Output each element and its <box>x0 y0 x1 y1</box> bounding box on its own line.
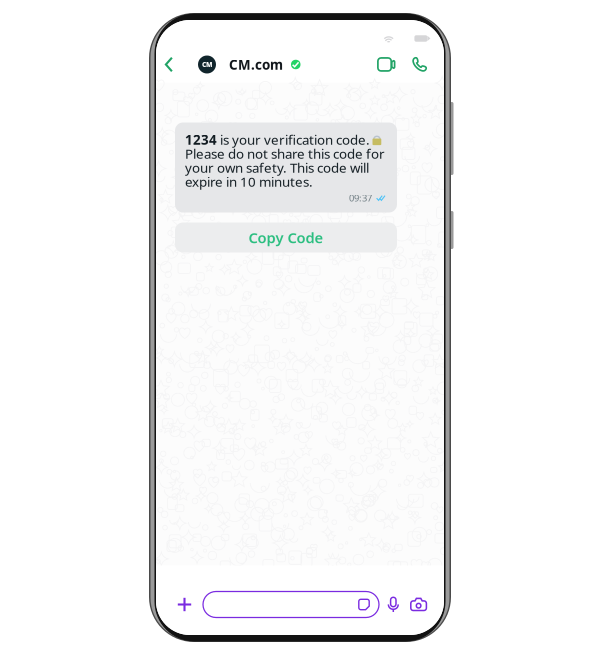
button[interactable]: Type a message <box>203 591 379 617</box>
button[interactable]: Voice call <box>411 49 428 79</box>
staticText: Please do not share this code for <box>185 145 385 162</box>
button[interactable]: CM <box>198 47 300 81</box>
staticText: your own safety. This code will <box>185 159 369 176</box>
button[interactable]: Video call <box>376 49 397 79</box>
button[interactable]: Copy Code <box>175 222 397 252</box>
staticText: CM.com <box>229 56 283 73</box>
staticText: CM <box>202 60 212 69</box>
staticText: 1234 is your verification code. <box>185 131 370 148</box>
button[interactable]: Attach <box>178 591 191 617</box>
button[interactable]: Voice message <box>387 591 400 617</box>
staticText: Copy Code <box>248 228 323 247</box>
button[interactable]: Back <box>158 47 180 81</box>
button[interactable]: Camera <box>410 591 427 617</box>
staticText: 09:37 <box>349 192 372 204</box>
staticText: expire in 10 minutes. <box>185 173 313 190</box>
